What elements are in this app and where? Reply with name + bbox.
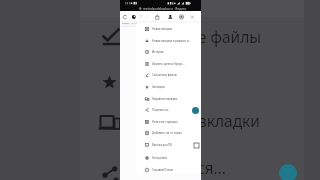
staticText: Добавить на гл. экран xyxy=(152,131,199,135)
button[interactable]: Добавить на гл. экран xyxy=(137,127,201,139)
staticText: История xyxy=(152,50,199,54)
button[interactable]: Справка/Отзыв xyxy=(137,164,201,176)
button[interactable]: Новая вкладка в режиме и... xyxy=(137,35,201,47)
button[interactable]: История xyxy=(137,46,201,58)
staticText: Недавние вкладки xyxy=(152,97,199,101)
button[interactable]: Скачанные файлы xyxy=(137,69,201,81)
staticText: Закладки xyxy=(152,85,199,89)
button[interactable]: Удалить данные брауз... xyxy=(137,58,201,70)
button[interactable]: Версия для ПК xyxy=(137,139,201,151)
staticText: вкладки xyxy=(198,110,260,131)
staticText: metodpodskazka.ru · Яндекс xyxy=(143,7,187,11)
staticText: Скачанные файлы xyxy=(152,73,199,77)
button[interactable]: Закладки xyxy=(137,81,201,93)
staticText: Версия для ПК xyxy=(152,143,194,147)
button[interactable]: Настройки xyxy=(137,152,201,164)
button[interactable]: Недавние вкладки xyxy=(137,93,201,105)
staticText: Справка/Отзыв xyxy=(152,168,199,172)
staticText: Поделиться... xyxy=(152,108,192,112)
staticText: Найти на странице xyxy=(152,120,199,124)
staticText: Настройки xyxy=(152,156,199,160)
button[interactable]: Найти на странице xyxy=(137,116,201,128)
button[interactable]: Поделиться... xyxy=(137,104,201,116)
staticText: ся... xyxy=(197,157,226,178)
staticText: Удалить данные брауз... xyxy=(152,62,199,66)
staticText: Новая вкладка xyxy=(152,27,199,31)
staticText: Новая вкладка в режиме и... xyxy=(152,39,199,43)
staticText: е файлы xyxy=(198,26,262,47)
button[interactable]: Новая вкладка xyxy=(137,23,201,35)
